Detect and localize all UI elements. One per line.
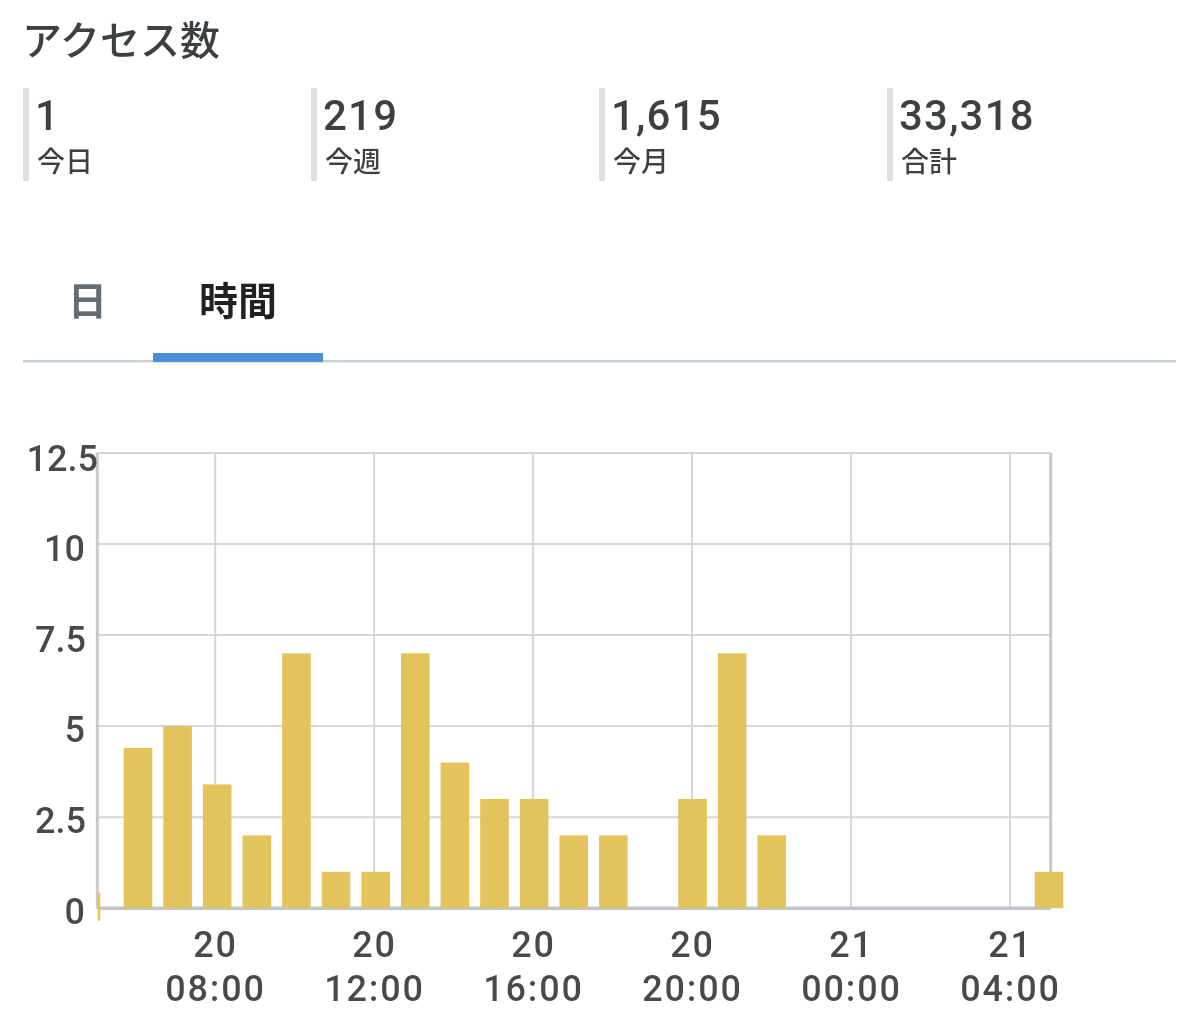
staticText: 00:00 [801,968,902,1010]
staticText: 時間 [199,270,278,326]
staticText: 5 [64,709,85,751]
staticText: 20 [511,924,556,966]
staticText: 04:00 [960,968,1061,1010]
staticText: 20 [352,924,397,966]
staticText: 20 [670,924,715,966]
staticText: 1,615 [611,91,722,140]
staticText: 33,318 [899,91,1035,140]
staticText: 10 [44,528,85,570]
staticText: 2.5 [35,800,86,842]
button[interactable]: 219 [311,88,591,183]
staticText: 7.5 [35,619,86,661]
staticText: 12:00 [324,968,425,1010]
staticText: 12.5 [26,438,98,480]
button[interactable]: 時間 [153,245,323,351]
staticText: 21 [829,924,874,966]
staticText: 今週 [325,140,382,181]
button[interactable]: 1 [23,88,303,183]
button[interactable]: 1,615 [599,88,879,183]
staticText: 20:00 [642,968,743,1010]
staticText: 219 [323,91,399,140]
staticText: 21 [988,924,1033,966]
staticText: 20 [193,924,238,966]
staticText: 今月 [613,140,670,181]
staticText: 08:00 [165,968,266,1010]
staticText: 合計 [901,140,958,181]
staticText: 1 [35,91,61,140]
staticText: 0 [64,891,85,933]
staticText: アクセス数 [22,9,220,67]
button[interactable]: 33,318 [887,88,1167,183]
staticText: 16:00 [483,968,584,1010]
staticText: 今日 [37,140,94,181]
button[interactable]: 日 [23,245,153,351]
staticText: 日 [68,270,108,326]
